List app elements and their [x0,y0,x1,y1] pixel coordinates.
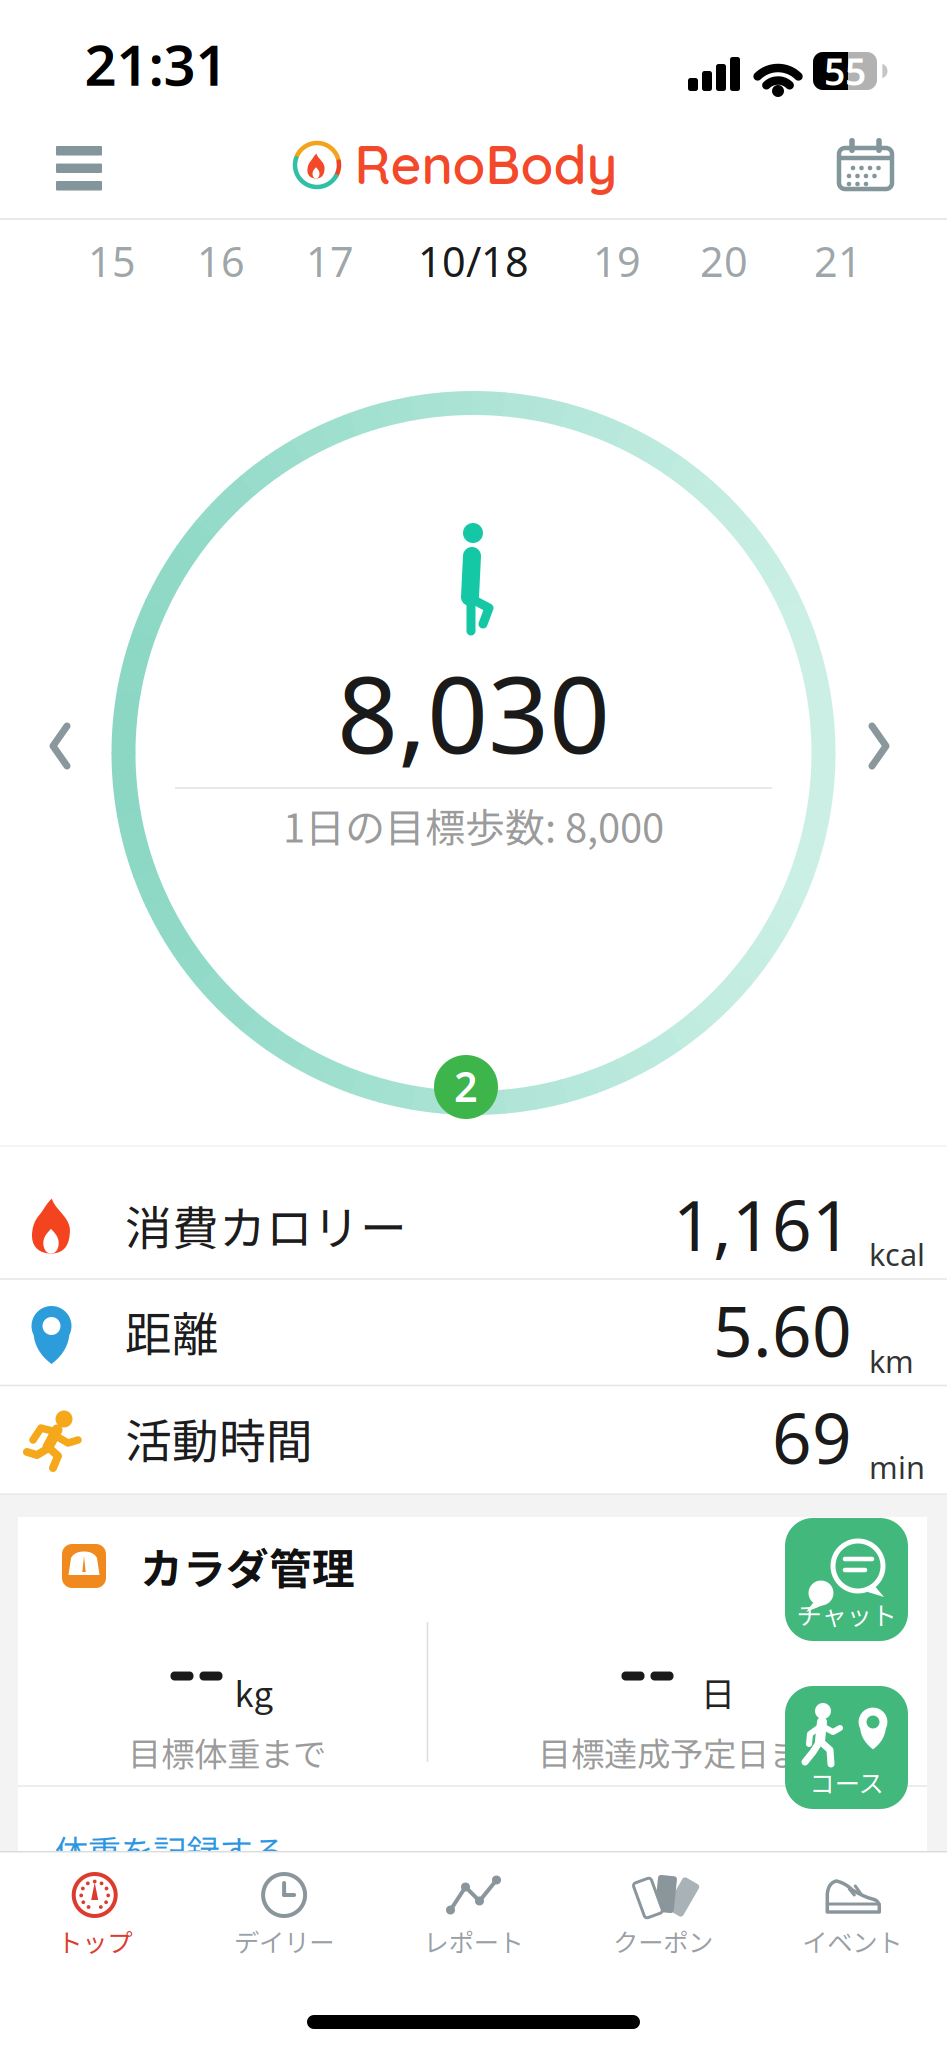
button[interactable]: コース [785,1686,908,1809]
button[interactable]: Menu [49,143,109,193]
button[interactable]: レポート [379,1851,568,1971]
staticText: 日 [700,1667,735,1717]
staticText: kcal [869,1234,925,1274]
staticText: 距離 [125,1297,219,1365]
button[interactable]: 17 [280,230,380,292]
staticText: トップ [57,1923,132,1959]
button[interactable]: Previous day [49,724,79,768]
staticText: 19 [593,234,641,288]
staticText: チャット [796,1596,896,1632]
button[interactable]: 20 [674,230,774,292]
button[interactable]: チャット [785,1518,908,1641]
staticText: 69 [772,1391,852,1483]
button[interactable]: トップ [0,1851,189,1971]
button[interactable]: デイリー [190,1851,379,1971]
staticText: 体重を記録する [54,1826,285,1874]
staticText: 5.60 [713,1284,852,1376]
staticText: 21:31 [84,27,227,101]
staticText: レポート [423,1923,523,1959]
staticText: 10/18 [418,234,529,288]
staticText: 2 [454,1059,478,1113]
staticText: 20 [700,234,748,288]
staticText: min [869,1447,925,1487]
button[interactable]: 10/18 [383,230,563,292]
staticText: kg [234,1667,273,1717]
staticText: 17 [306,234,354,288]
button[interactable]: Next day [868,724,898,768]
staticText: 21 [814,234,862,288]
staticText: 8,030 [337,641,610,783]
button[interactable]: クーポン [568,1851,757,1971]
button[interactable]: Calendar [836,138,896,194]
button[interactable]: 16 [171,230,271,292]
staticText: クーポン [613,1923,713,1959]
staticText: km [869,1341,914,1381]
staticText: 活動時間 [125,1404,313,1472]
staticText: デイリー [234,1923,334,1959]
staticText: 1日の目標歩数: 8,000 [283,796,664,854]
button[interactable]: 15 [62,230,162,292]
staticText: イベント [802,1923,902,1959]
staticText: 消費カロリー [125,1191,407,1259]
staticText: RenoBody [354,131,617,197]
staticText: カラダ管理 [140,1535,355,1597]
staticText: 目標達成予定日ま [538,1728,802,1776]
staticText: コース [809,1764,883,1800]
button[interactable]: 21 [788,230,888,292]
staticText: 目標体重まで [128,1728,326,1776]
staticText: 16 [197,234,245,288]
button[interactable]: 体重を記録する [54,1826,285,1874]
staticText: 15 [88,234,136,288]
button[interactable]: イベント [758,1851,947,1971]
staticText: 55 [824,46,866,96]
button[interactable]: 19 [567,230,667,292]
staticText: 1,161 [673,1178,852,1270]
